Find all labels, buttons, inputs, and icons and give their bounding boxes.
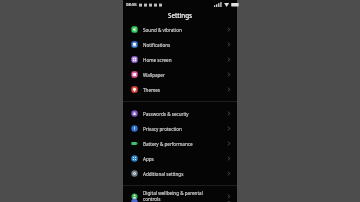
staticText: Home screen [143,57,172,63]
button[interactable]: Apps [123,151,237,166]
button[interactable]: Themes [123,82,237,97]
staticText: Wallpaper [143,72,165,78]
button[interactable]: Wallpaper [123,67,237,82]
staticText: Battery & performance [143,141,193,147]
staticText: 08:55 [126,2,137,8]
staticText: Sound & vibration [143,27,182,33]
staticText: Additional settings [143,171,184,177]
staticText: Notifications [143,42,171,48]
staticText: Settings [168,11,193,19]
button[interactable]: Home screen [123,52,237,67]
button[interactable]: Battery & performance [123,136,237,151]
button[interactable]: Additional settings [123,166,237,181]
staticText: Digital wellbeing & parental controls [143,190,203,202]
staticText: Themes [143,87,161,93]
button[interactable]: Privacy protection [123,121,237,136]
staticText: Apps [143,156,154,162]
button[interactable]: Notifications [123,37,237,52]
button[interactable]: Passwords & security [123,106,237,121]
button[interactable]: Digital wellbeing & parental controls [123,190,237,202]
staticText: Privacy protection [143,126,182,132]
staticText: Passwords & security [143,111,189,117]
button[interactable]: Sound & vibration [123,22,237,37]
